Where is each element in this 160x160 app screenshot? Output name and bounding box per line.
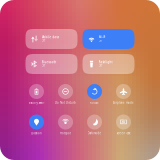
staticText: Screen cast	[116, 131, 130, 135]
staticText: Airplane mode	[113, 101, 134, 104]
staticText: Hotspot	[60, 131, 71, 135]
button[interactable]: Wi-Fi	[82, 29, 134, 49]
button[interactable]: Bluetooth	[25, 54, 77, 74]
button[interactable]: Dark mode	[80, 114, 109, 135]
button[interactable]: Location	[22, 114, 51, 135]
button[interactable]: Screen cast	[109, 114, 138, 135]
staticText: Do Not Disturb	[55, 101, 76, 104]
staticText: Battery Saver	[28, 101, 44, 104]
button[interactable]: Flashlight	[82, 54, 134, 74]
staticText: Off	[41, 64, 45, 67]
staticText: Flashlight	[98, 60, 112, 64]
staticText: Off	[41, 39, 45, 42]
staticText: On	[98, 39, 102, 42]
staticText: Off	[98, 64, 102, 67]
button[interactable]: Rotate	[80, 84, 109, 104]
staticText: Mobile data	[41, 35, 59, 39]
staticText: Rotate	[90, 101, 99, 104]
button[interactable]: Airplane mode	[109, 84, 138, 104]
button[interactable]: Mobile data	[25, 29, 77, 49]
staticText: Bluetooth	[41, 60, 56, 64]
staticText: Wi-Fi	[98, 35, 105, 39]
staticText: Location	[31, 131, 42, 135]
button[interactable]: Battery Saver	[22, 84, 51, 104]
staticText: Dark mode	[87, 131, 101, 135]
button[interactable]: Do Not Disturb	[51, 84, 80, 104]
button[interactable]: Hotspot	[51, 114, 80, 135]
